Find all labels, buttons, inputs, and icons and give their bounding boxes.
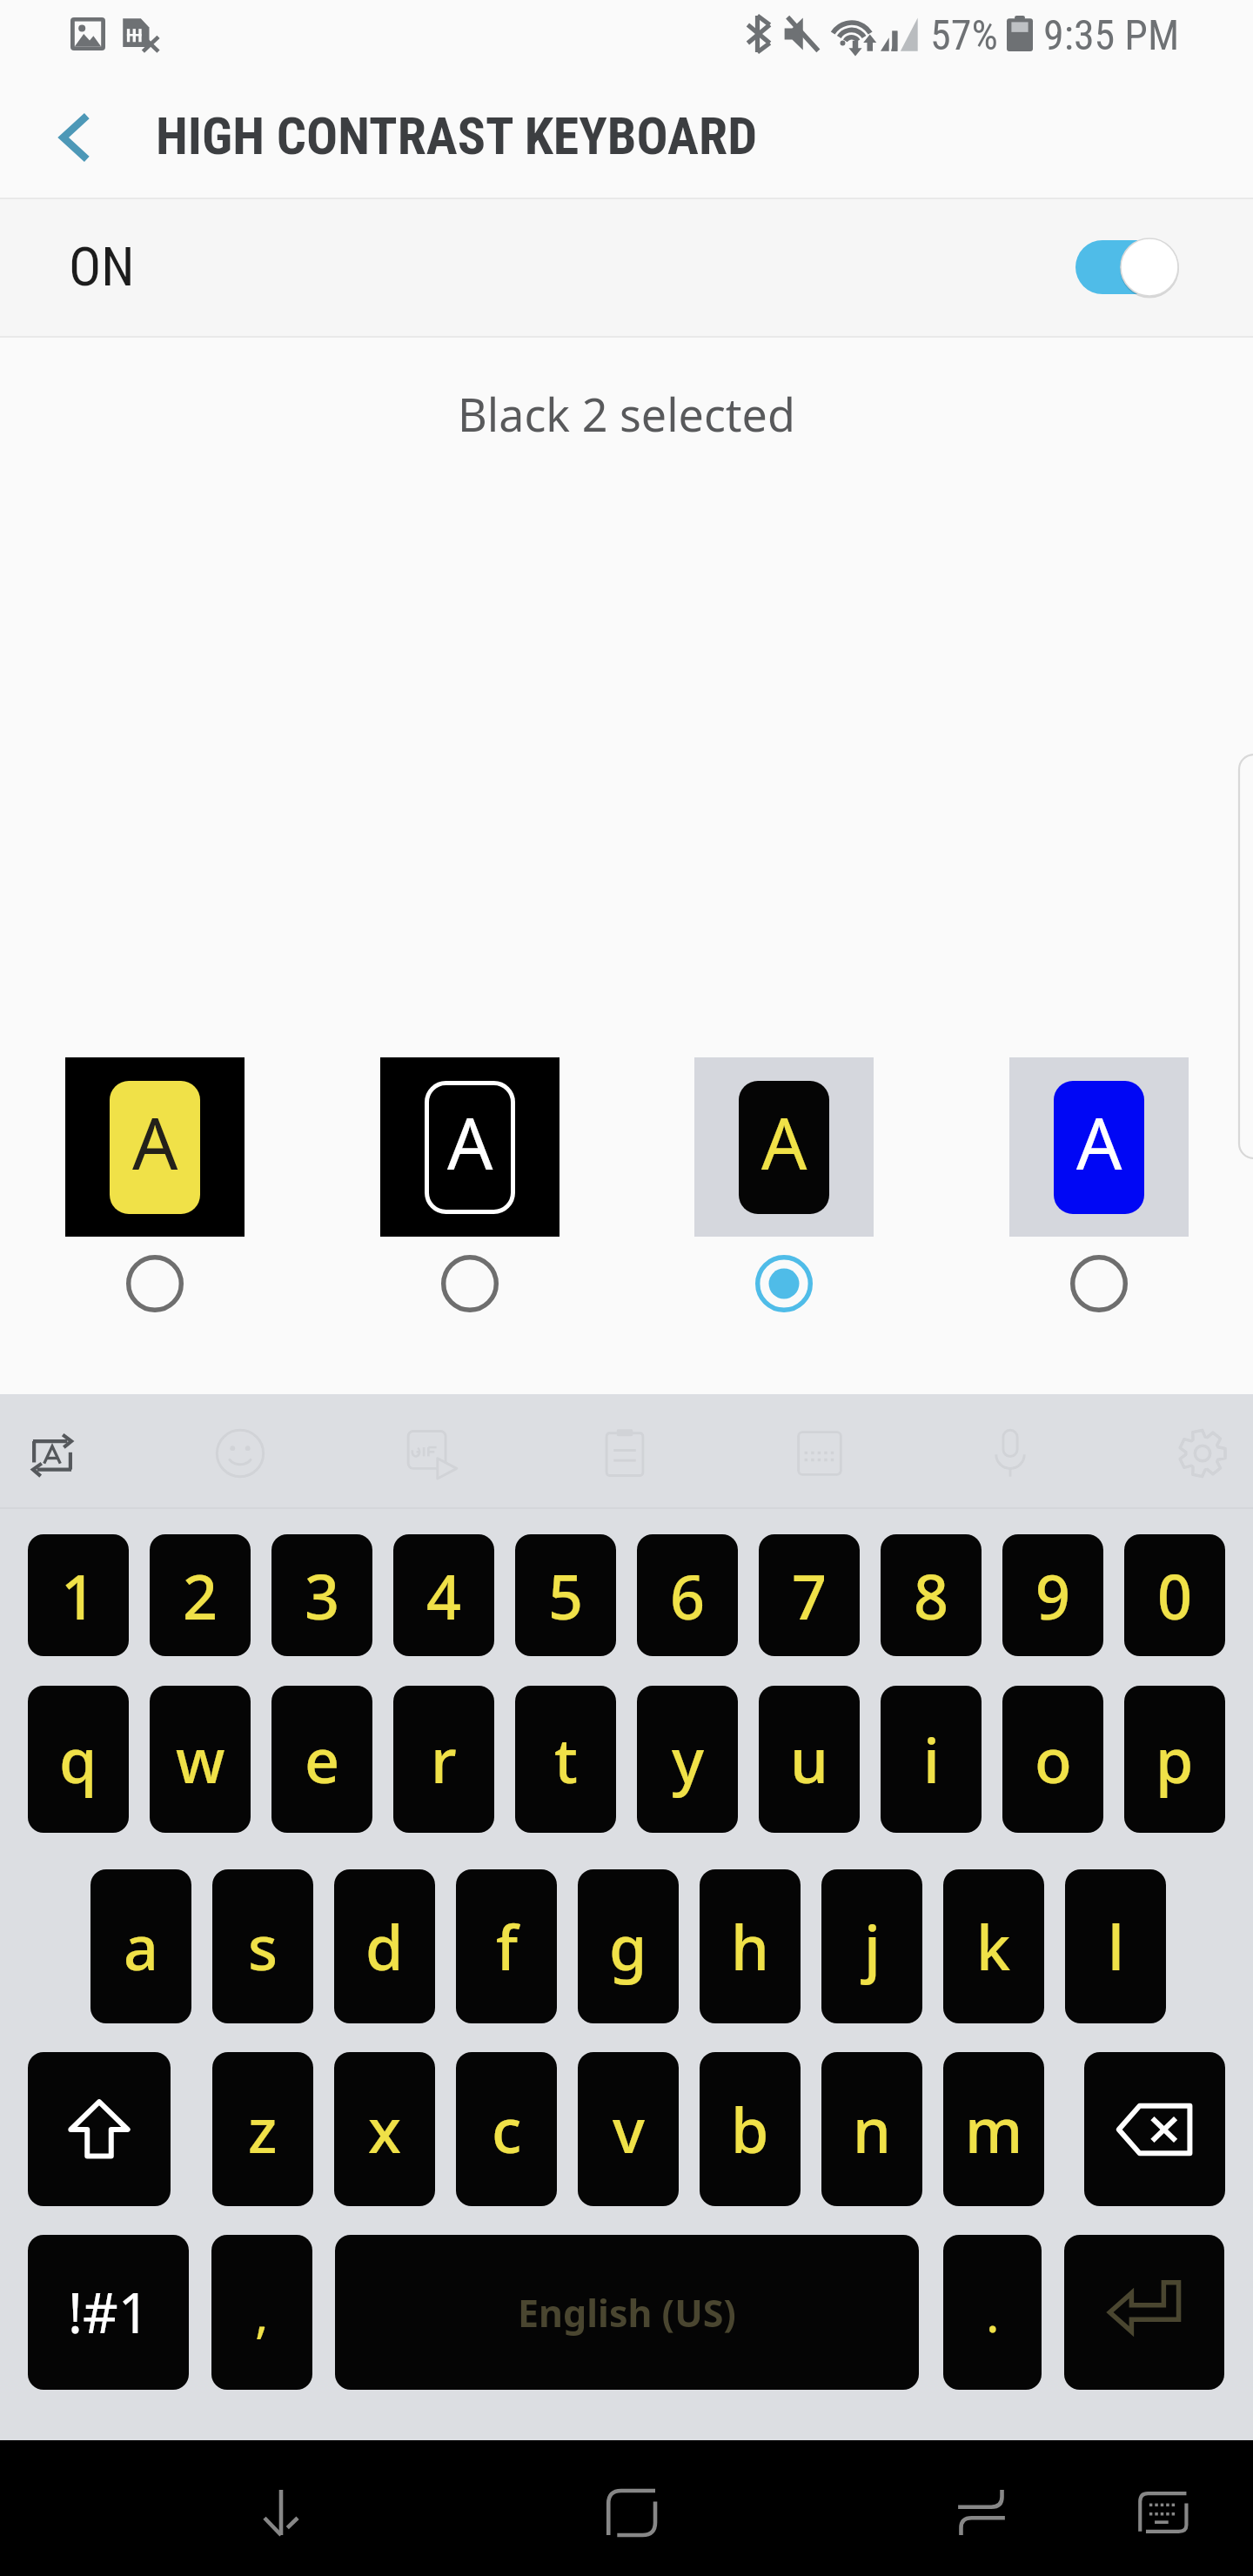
button[interactable]: Keyboard theme 4 [1009, 1057, 1189, 1237]
staticText: p [1156, 1718, 1194, 1801]
staticText: HIGH CONTRAST KEYBOARD [156, 105, 758, 166]
staticText: 8 [914, 1554, 949, 1637]
button[interactable]: x [334, 2052, 435, 2206]
button[interactable]: v [578, 2052, 679, 2206]
button[interactable]: z [212, 2052, 313, 2206]
button[interactable]: r [393, 1686, 494, 1833]
button[interactable]: j [821, 1869, 922, 2023]
staticText: z [248, 2088, 278, 2170]
staticText: e [305, 1718, 340, 1801]
button[interactable]: n [821, 2052, 922, 2206]
staticText: A [132, 1093, 178, 1191]
button[interactable]: 8 [881, 1534, 982, 1656]
staticText: 4 [426, 1554, 462, 1637]
button[interactable]: w [150, 1686, 251, 1833]
button[interactable]: Navigate up [23, 77, 128, 198]
staticText: r [431, 1718, 457, 1801]
button[interactable]: 1 [28, 1534, 129, 1656]
button[interactable]: o [1002, 1686, 1103, 1833]
staticText: a [124, 1905, 159, 1988]
button[interactable]: p [1124, 1686, 1225, 1833]
button[interactable]: Hide keyboard [203, 2440, 359, 2576]
button[interactable]: k [943, 1869, 1044, 2023]
staticText: d [365, 1905, 404, 1988]
button[interactable]: Recents [903, 2440, 1060, 2576]
staticText: 3 [305, 1554, 340, 1637]
staticText: h [731, 1905, 769, 1988]
staticText: A [761, 1093, 807, 1191]
button[interactable]: i [881, 1686, 982, 1833]
button[interactable]: 6 [637, 1534, 738, 1656]
button[interactable]: y [637, 1686, 738, 1833]
button[interactable]: q [28, 1686, 129, 1833]
button[interactable]: Keyboard theme 1 [65, 1057, 245, 1237]
button[interactable]: d [334, 1869, 435, 2023]
staticText: A [1076, 1093, 1122, 1191]
button[interactable]: English (US) [335, 2235, 919, 2390]
staticText: i [923, 1718, 940, 1801]
button[interactable]: Select theme 3 [732, 1237, 836, 1334]
button[interactable]: Select theme 1 [103, 1237, 207, 1334]
button[interactable]: Shift [28, 2052, 171, 2206]
button[interactable]: 5 [515, 1534, 616, 1656]
staticText: y [672, 1718, 704, 1801]
staticText: . [986, 2278, 1000, 2347]
button[interactable]: Backspace [1084, 2052, 1225, 2206]
staticText: j [864, 1905, 881, 1988]
button[interactable]: 7 [759, 1534, 860, 1656]
button[interactable]: l [1065, 1869, 1166, 2023]
staticText: !#1 [68, 2275, 150, 2350]
staticText: k [976, 1905, 1011, 1988]
staticText: n [853, 2088, 891, 2170]
staticText: l [1108, 1905, 1124, 1988]
button[interactable]: f [456, 1869, 557, 2023]
staticText: x [368, 2088, 402, 2170]
button[interactable]: m [943, 2052, 1044, 2206]
staticText: 9 [1035, 1554, 1071, 1637]
staticText: 2 [183, 1554, 218, 1637]
button[interactable]: Select theme 2 [418, 1237, 522, 1334]
staticText: ON [69, 235, 135, 299]
button[interactable]: Enter [1064, 2235, 1224, 2390]
button[interactable]: s [212, 1869, 313, 2023]
button[interactable]: Keyboard theme 2 [380, 1057, 559, 1237]
staticText: f [496, 1905, 518, 1988]
button[interactable]: b [700, 2052, 801, 2206]
staticText: 5 [548, 1554, 584, 1637]
button[interactable]: 4 [393, 1534, 494, 1656]
staticText: v [613, 2088, 645, 2170]
button[interactable]: High contrast keyboard on [1075, 233, 1180, 301]
staticText: m [965, 2088, 1023, 2170]
button[interactable]: 2 [150, 1534, 251, 1656]
button[interactable]: 0 [1124, 1534, 1225, 1656]
button[interactable]: Translate [0, 1399, 106, 1507]
button[interactable]: , [211, 2235, 312, 2390]
button[interactable]: c [456, 2052, 557, 2206]
staticText: 1 [61, 1554, 97, 1637]
button[interactable]: . [943, 2235, 1042, 2390]
button[interactable]: u [759, 1686, 860, 1833]
staticText: 0 [1157, 1554, 1193, 1637]
staticText: s [248, 1905, 278, 1988]
button[interactable]: h [700, 1869, 801, 2023]
staticText: , [255, 2278, 269, 2347]
button[interactable]: Keyboard theme 3 [694, 1057, 874, 1237]
staticText: o [1035, 1718, 1072, 1801]
button[interactable]: ON [0, 199, 1253, 336]
button[interactable]: 9 [1002, 1534, 1103, 1656]
button[interactable]: t [515, 1686, 616, 1833]
button[interactable]: a [90, 1869, 191, 2023]
button[interactable]: g [578, 1869, 679, 2023]
button[interactable]: Select theme 4 [1047, 1237, 1151, 1334]
button[interactable]: 3 [271, 1534, 372, 1656]
button[interactable]: !#1 [28, 2235, 189, 2390]
button[interactable]: e [271, 1686, 372, 1833]
button[interactable]: Home [553, 2440, 709, 2576]
button[interactable]: Change keyboard [1084, 2440, 1241, 2576]
